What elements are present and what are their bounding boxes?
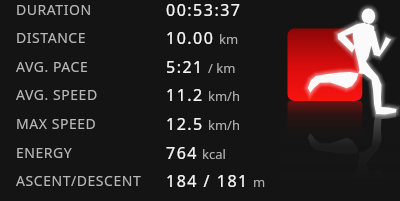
staticText: DURATION: [16, 0, 92, 19]
staticText: 5:21: [166, 56, 204, 78]
staticText: AVG. SPEED: [16, 85, 98, 104]
staticText: 764: [166, 142, 198, 164]
staticText: 10.00: [166, 27, 215, 49]
staticText: km/h: [208, 87, 240, 105]
staticText: 00:53:37: [166, 0, 242, 21]
staticText: / km: [208, 59, 236, 77]
staticText: ENERGY: [16, 143, 73, 162]
staticText: 12.5: [166, 113, 204, 135]
staticText: ASCENT/DESCENT: [16, 171, 142, 190]
staticText: kcal: [202, 145, 226, 163]
staticText: m: [253, 173, 266, 191]
staticText: 11.2: [166, 84, 204, 106]
staticText: AVG. PACE: [16, 57, 89, 76]
staticText: km/h: [208, 116, 240, 134]
staticText: MAX SPEED: [16, 114, 97, 133]
staticText: km: [219, 30, 239, 48]
staticText: 184 / 181: [166, 170, 249, 192]
staticText: DISTANCE: [16, 28, 87, 47]
